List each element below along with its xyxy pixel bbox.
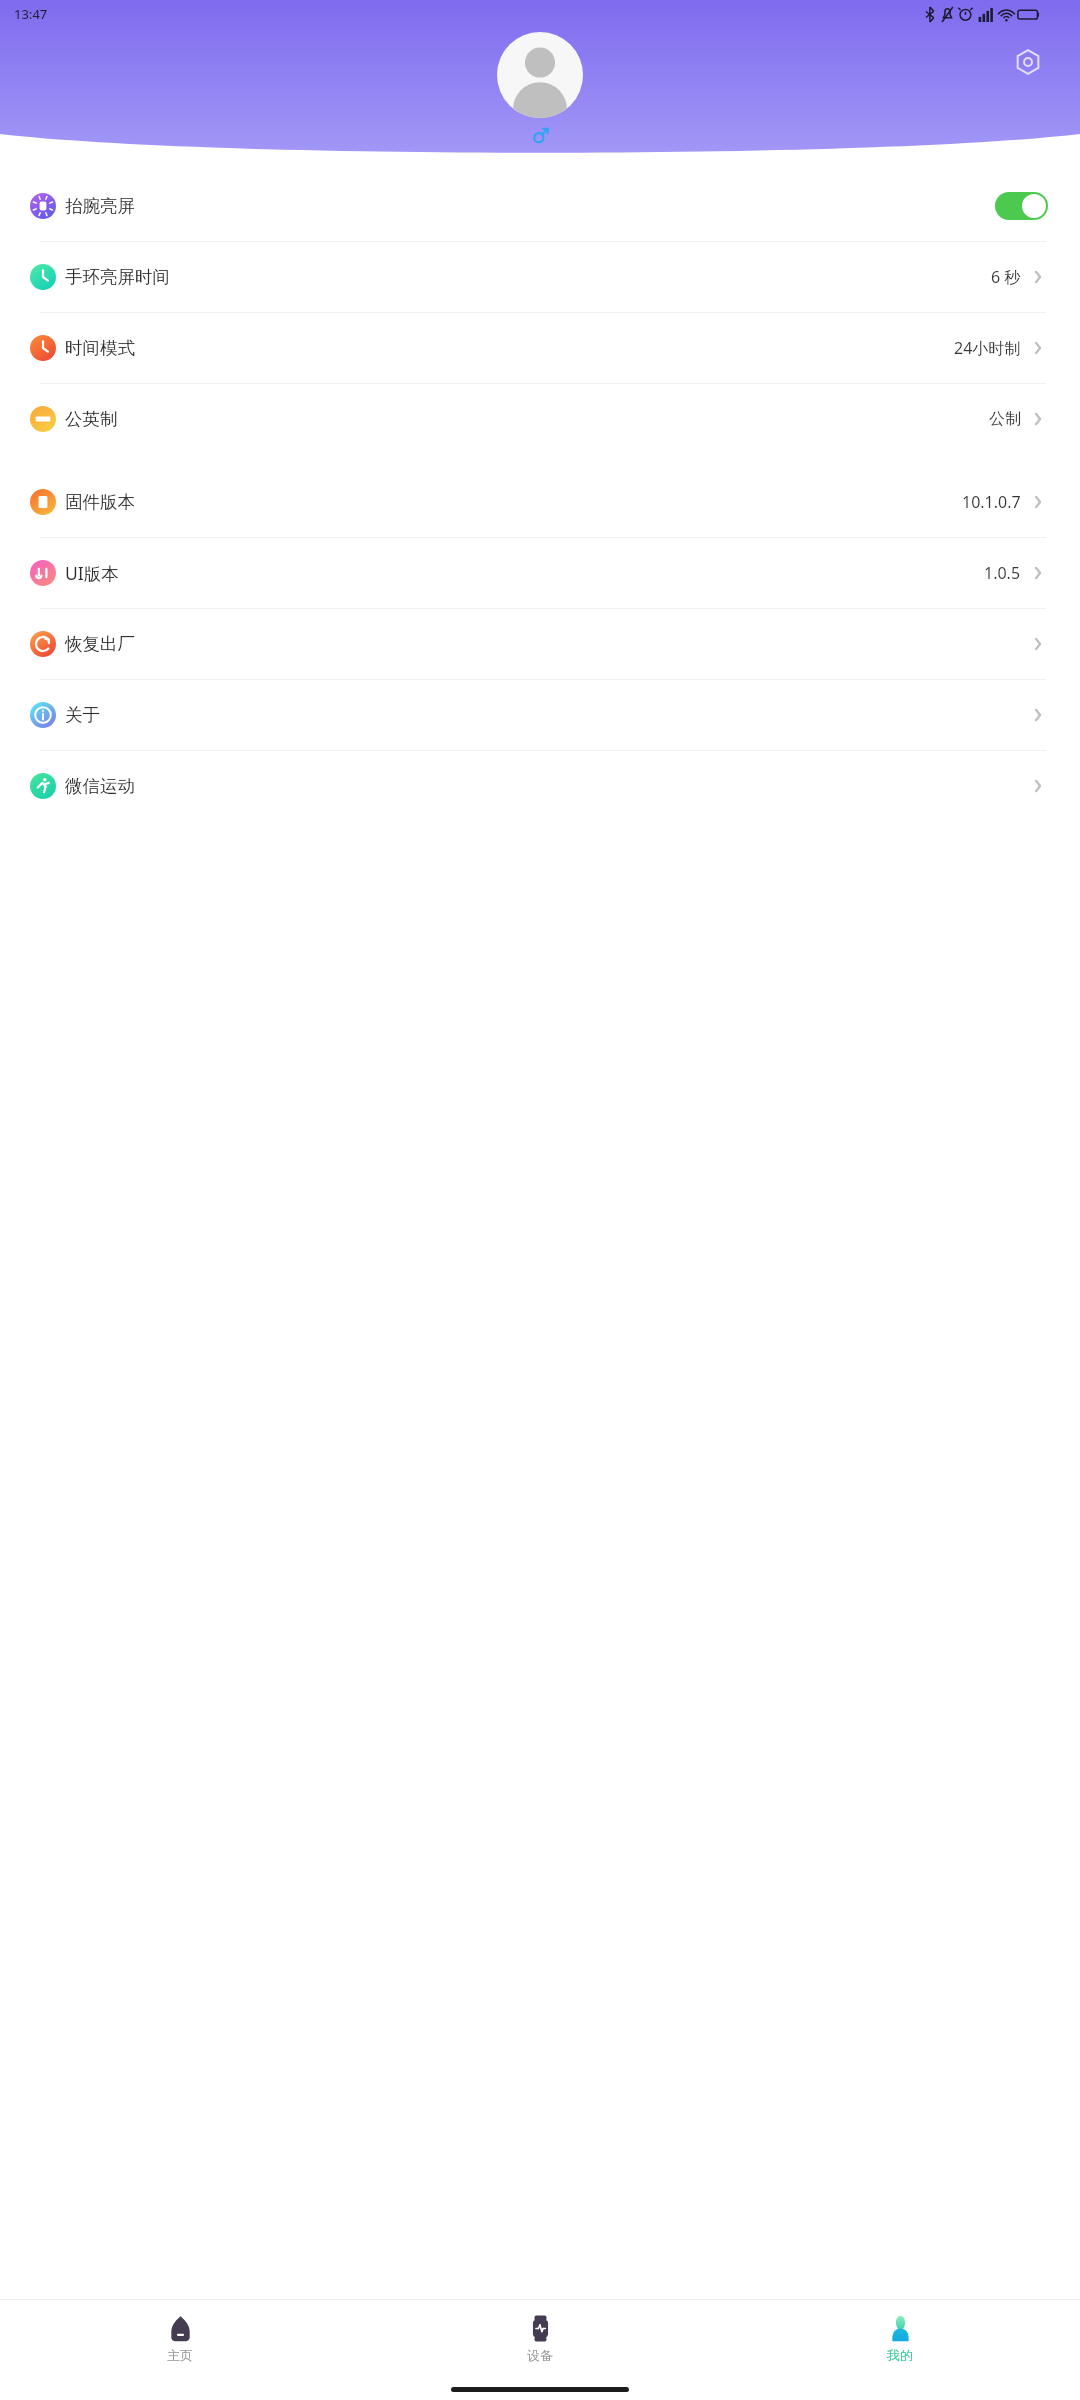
staticText: 固件版本 bbox=[65, 491, 135, 513]
staticText: 公英制 bbox=[65, 408, 118, 430]
staticText: 微信运动 bbox=[65, 775, 135, 797]
button[interactable]: 我的 bbox=[720, 2300, 1080, 2378]
staticText: 关于 bbox=[65, 704, 100, 726]
button[interactable]: Raise to wake toggle, on bbox=[995, 192, 1048, 220]
staticText: UI版本 bbox=[65, 561, 119, 585]
staticText: 抬腕亮屏 bbox=[65, 195, 135, 217]
other: Male bbox=[532, 127, 549, 144]
button[interactable]: 微信运动 bbox=[14, 751, 1066, 821]
staticText: 公制 bbox=[989, 409, 1021, 429]
staticText: 1.0.5 bbox=[984, 562, 1021, 584]
staticText: 时间模式 bbox=[65, 337, 135, 359]
staticText: 10.1.0.7 bbox=[962, 491, 1021, 513]
button[interactable]: 设备 bbox=[360, 2300, 720, 2378]
button[interactable]: 固件版本 bbox=[14, 467, 1066, 537]
staticText: 6 秒 bbox=[991, 266, 1021, 288]
button[interactable]: 恢复出厂 bbox=[14, 609, 1066, 679]
staticText: 13:47 bbox=[14, 5, 48, 23]
button[interactable]: UI版本 bbox=[14, 538, 1066, 608]
staticText: 我的 bbox=[887, 2347, 913, 2363]
button[interactable]: Settings bbox=[1012, 46, 1044, 78]
staticText: 手环亮屏时间 bbox=[65, 266, 170, 288]
staticText: 设备 bbox=[527, 2347, 553, 2363]
button[interactable]: Profile avatar bbox=[497, 32, 583, 118]
button[interactable]: 关于 bbox=[14, 680, 1066, 750]
button[interactable]: 时间模式 bbox=[14, 313, 1066, 383]
button[interactable]: 主页 bbox=[0, 2300, 360, 2378]
staticText: 主页 bbox=[167, 2347, 193, 2363]
staticText: 恢复出厂 bbox=[65, 633, 135, 655]
button[interactable]: 抬腕亮屏 bbox=[14, 171, 1066, 241]
staticText: 24小时制 bbox=[954, 337, 1021, 359]
button[interactable]: 手环亮屏时间 bbox=[14, 242, 1066, 312]
button[interactable]: 公英制 bbox=[14, 384, 1066, 454]
